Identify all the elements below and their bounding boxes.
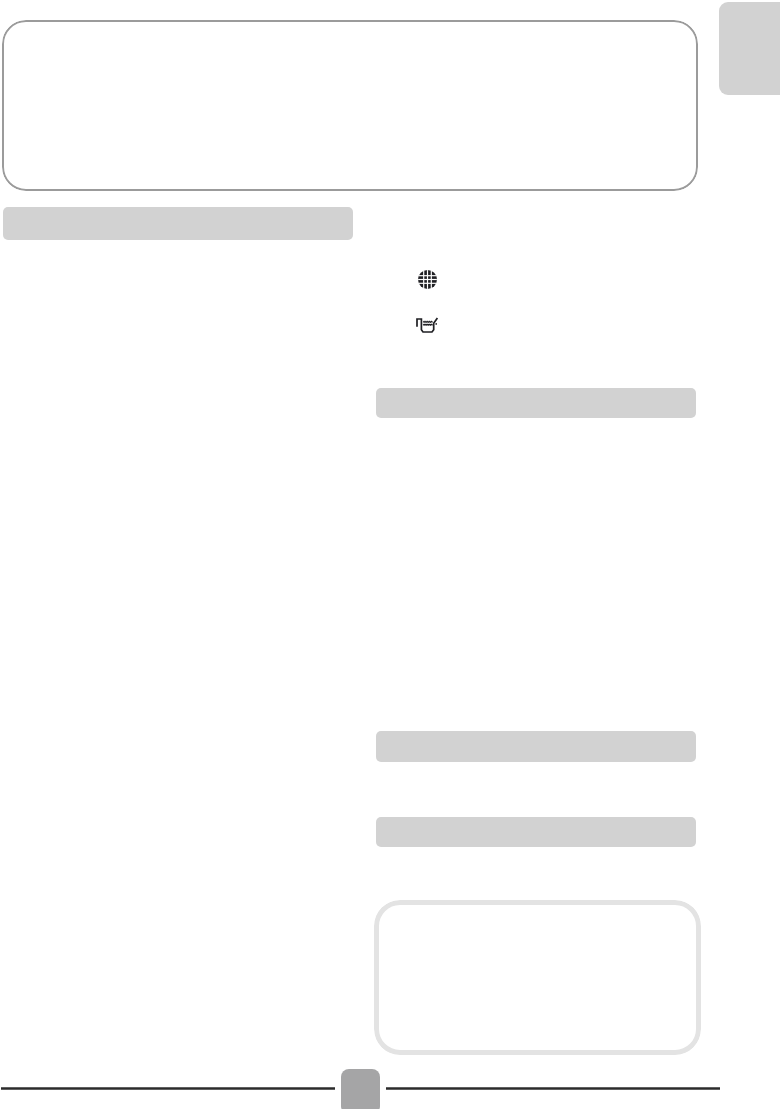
button[interactable]: Wash care [416, 318, 439, 333]
button[interactable]: Action [719, 2, 780, 95]
button[interactable]: Details card [374, 900, 701, 1055]
button[interactable]: Language [418, 270, 437, 289]
button[interactable]: Home [341, 1069, 380, 1109]
button[interactable]: Hero card [2, 20, 698, 191]
